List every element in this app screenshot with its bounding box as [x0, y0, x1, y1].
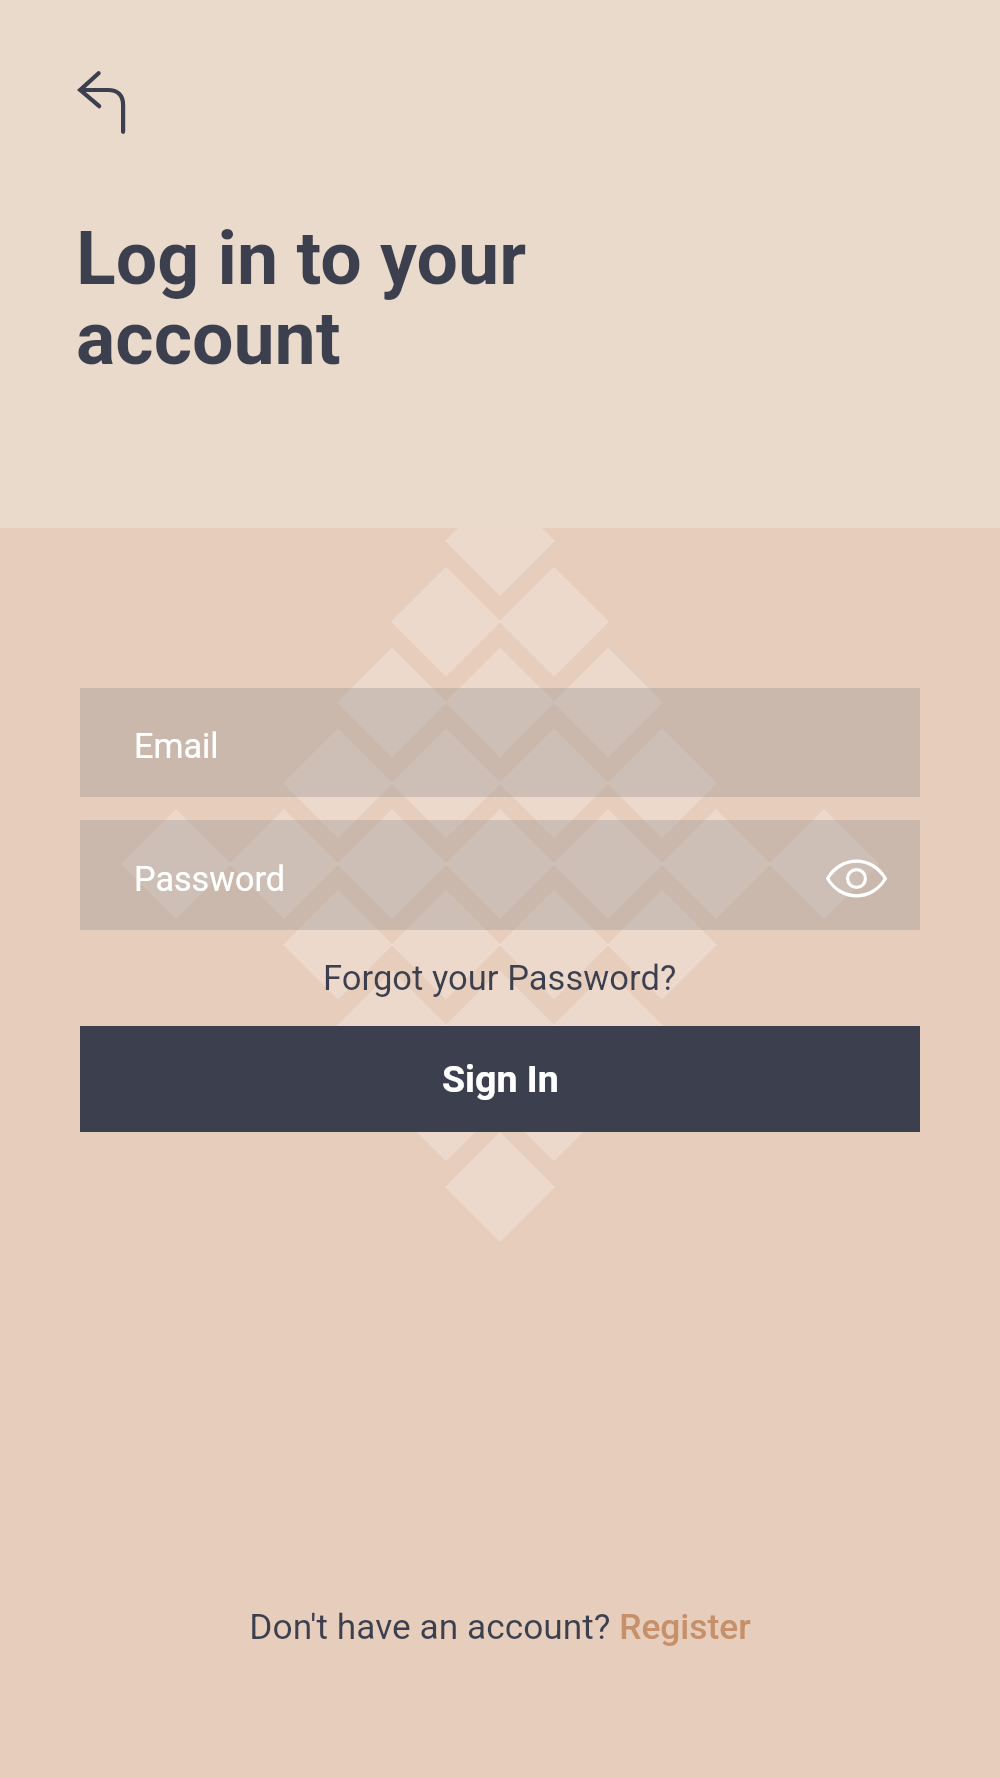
- button[interactable]: Email: [80, 688, 920, 797]
- staticText: Password: [134, 859, 286, 899]
- staticText: Don't have an account? Register: [249, 1606, 751, 1647]
- button[interactable]: Back: [56, 48, 156, 148]
- button[interactable]: Show password: [818, 840, 894, 916]
- button[interactable]: Sign In: [80, 1026, 920, 1132]
- staticText: Log in to your account: [76, 216, 527, 382]
- button[interactable]: Don't have an account? Register: [237, 1598, 763, 1655]
- staticText: Sign In: [442, 1057, 559, 1101]
- button[interactable]: Password: [80, 820, 920, 930]
- staticText: Forgot your Password?: [323, 958, 677, 999]
- staticText: Email: [134, 726, 219, 766]
- button[interactable]: Forgot your Password?: [313, 952, 687, 1005]
